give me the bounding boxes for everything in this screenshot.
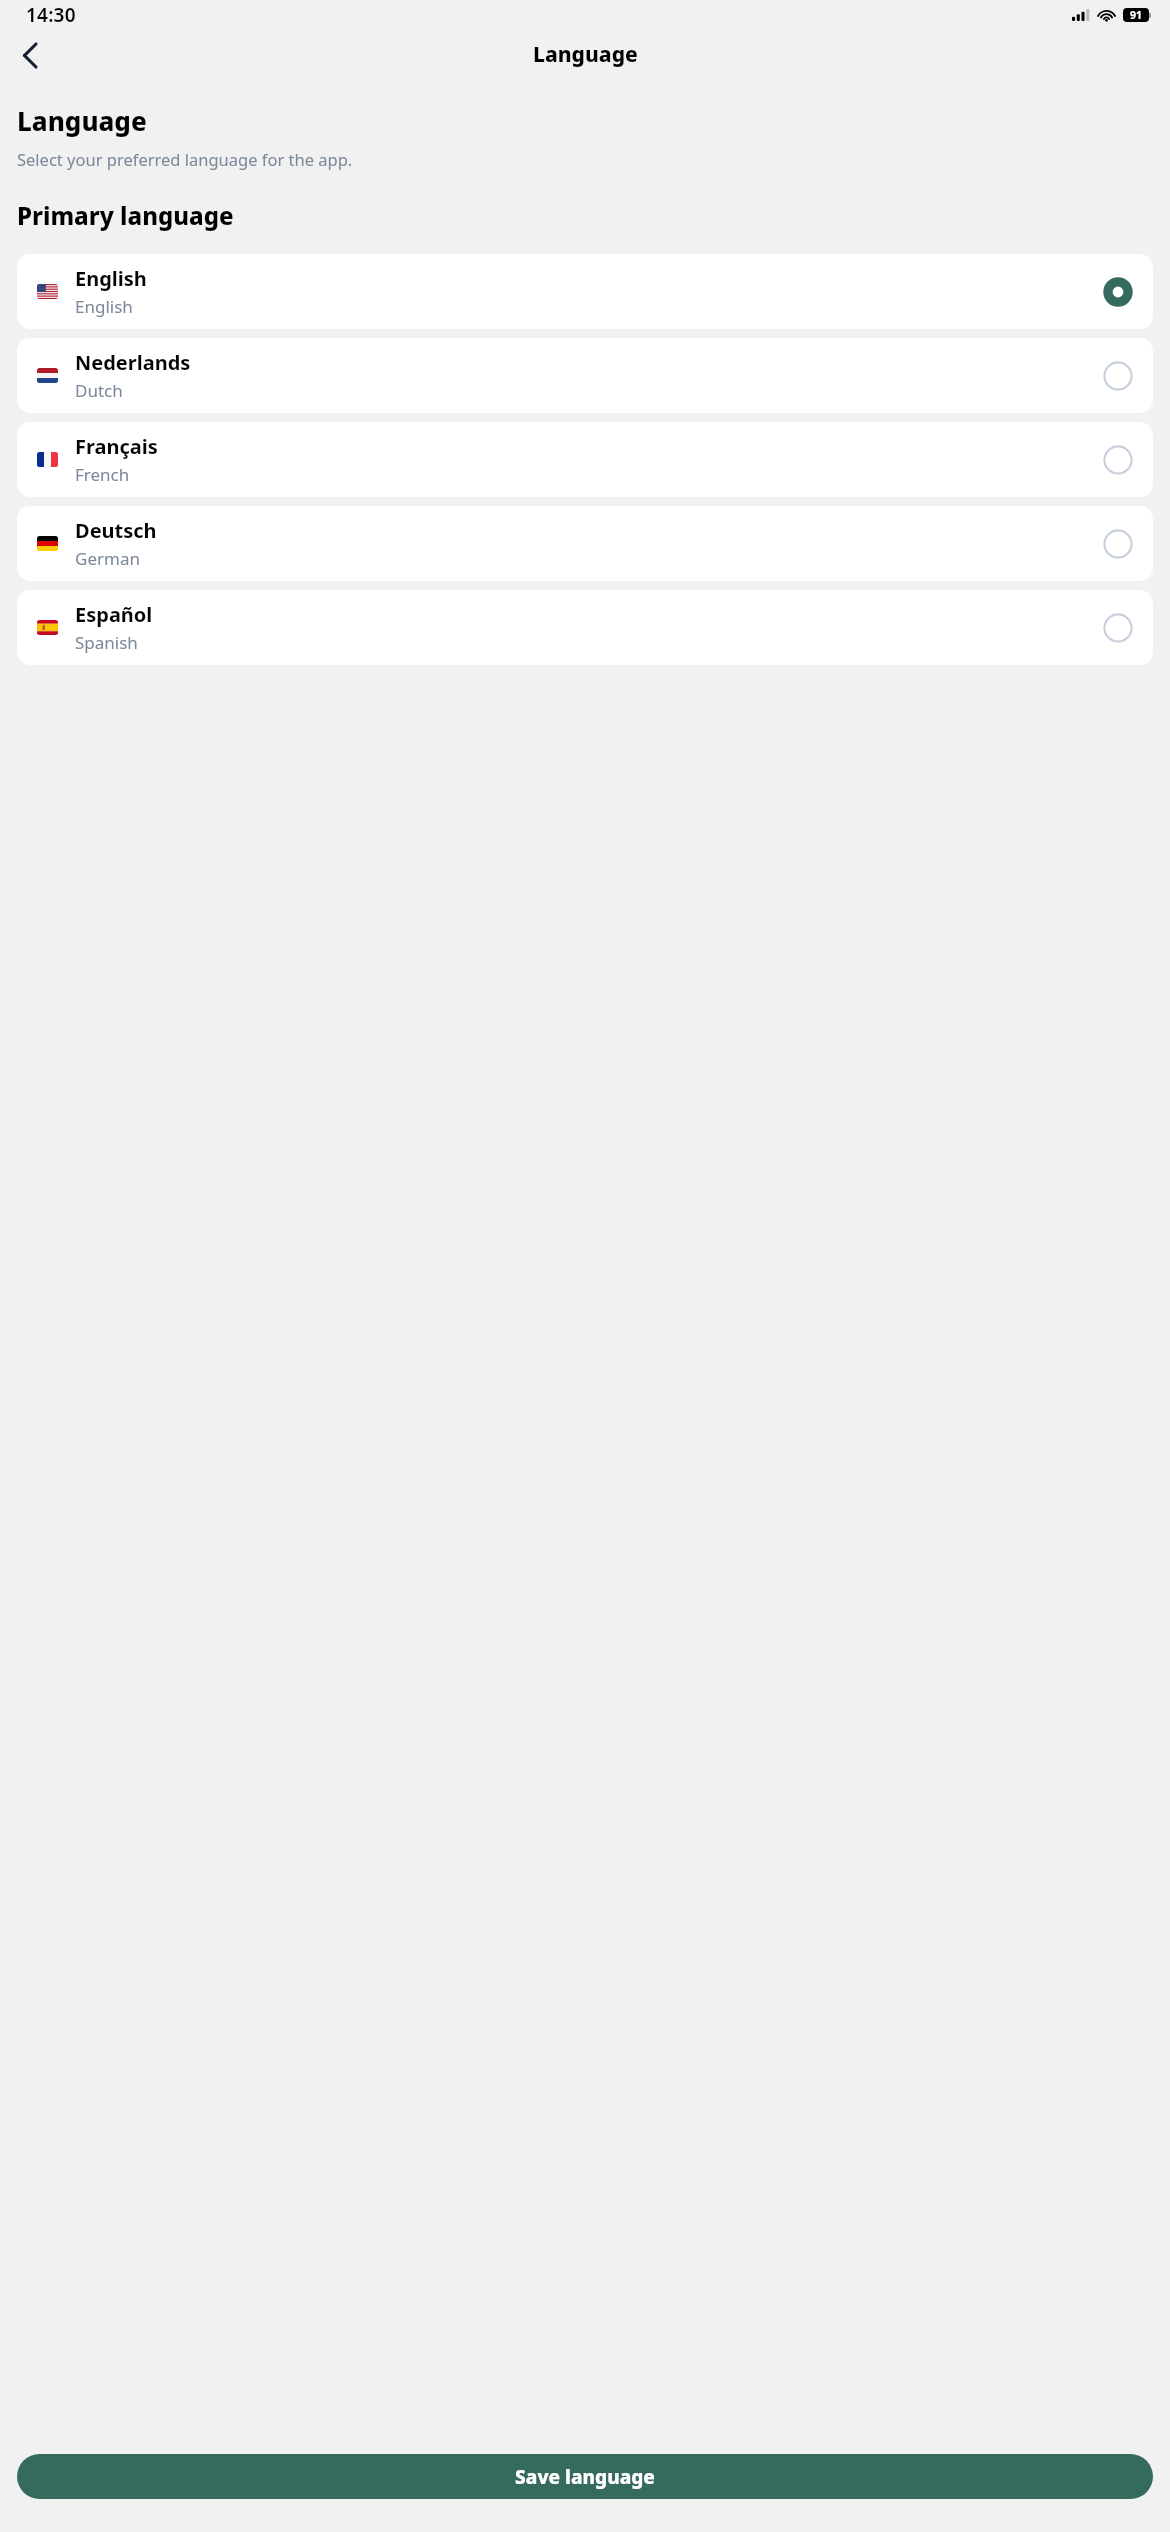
button[interactable]: Nederlands xyxy=(17,338,1153,413)
staticText: French xyxy=(75,463,130,486)
staticText: English xyxy=(75,295,133,318)
staticText: Deutsch xyxy=(75,517,157,544)
staticText: Dutch xyxy=(75,379,123,402)
staticText: Language xyxy=(17,103,147,138)
button[interactable]: Deutsch xyxy=(17,506,1153,581)
staticText: Spanish xyxy=(75,631,138,654)
staticText: Primary language xyxy=(17,199,234,232)
staticText: Select your preferred language for the a… xyxy=(17,148,353,170)
staticText: 14:30 xyxy=(26,2,76,28)
staticText: Nederlands xyxy=(75,349,191,376)
staticText: German xyxy=(75,547,140,570)
button[interactable]: Français xyxy=(17,422,1153,497)
button[interactable]: Back xyxy=(6,32,52,78)
staticText: 91 xyxy=(1130,8,1143,22)
staticText: Español xyxy=(75,601,153,628)
staticText: Language xyxy=(533,40,638,69)
staticText: English xyxy=(75,265,147,292)
button[interactable]: Save language xyxy=(17,2454,1153,2499)
button[interactable]: English xyxy=(17,254,1153,329)
staticText: Français xyxy=(75,433,158,460)
button[interactable]: Español xyxy=(17,590,1153,665)
staticText: Save language xyxy=(515,2464,655,2490)
